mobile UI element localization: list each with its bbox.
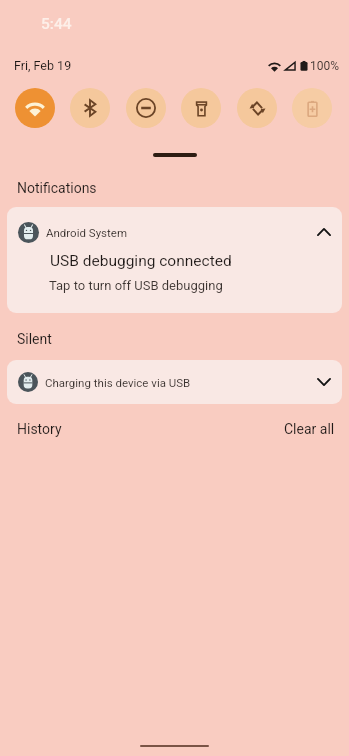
- button[interactable]: Do Not Disturb: [126, 88, 166, 128]
- staticText: Silent: [17, 331, 52, 347]
- staticText: USB debugging connected: [50, 252, 232, 270]
- staticText: Android System: [46, 226, 127, 239]
- button[interactable]: Flashlight: [181, 88, 221, 128]
- button[interactable]: Expand notification: [311, 369, 337, 395]
- button[interactable]: Battery Saver: [292, 88, 332, 128]
- button[interactable]: Collapse notification: [311, 219, 337, 245]
- staticText: Clear all: [284, 421, 335, 437]
- staticText: Charging this device via USB: [45, 376, 191, 389]
- button[interactable]: Auto rotate: [237, 88, 277, 128]
- staticText: 5:44: [41, 15, 72, 33]
- button[interactable]: Clear all: [284, 421, 335, 437]
- staticText: 100%: [310, 59, 340, 73]
- button[interactable]: History: [17, 421, 62, 437]
- staticText: Fri, Feb 19: [14, 58, 72, 73]
- staticText: Tap to turn off USB debugging: [49, 278, 223, 293]
- button[interactable]: Bluetooth: [70, 88, 110, 128]
- staticText: Notifications: [17, 180, 97, 196]
- button[interactable]: Wi-Fi: [15, 88, 55, 128]
- button[interactable]: Android System: [7, 207, 342, 313]
- button[interactable]: Charging this device via USB: [7, 360, 342, 404]
- staticText: History: [17, 421, 62, 437]
